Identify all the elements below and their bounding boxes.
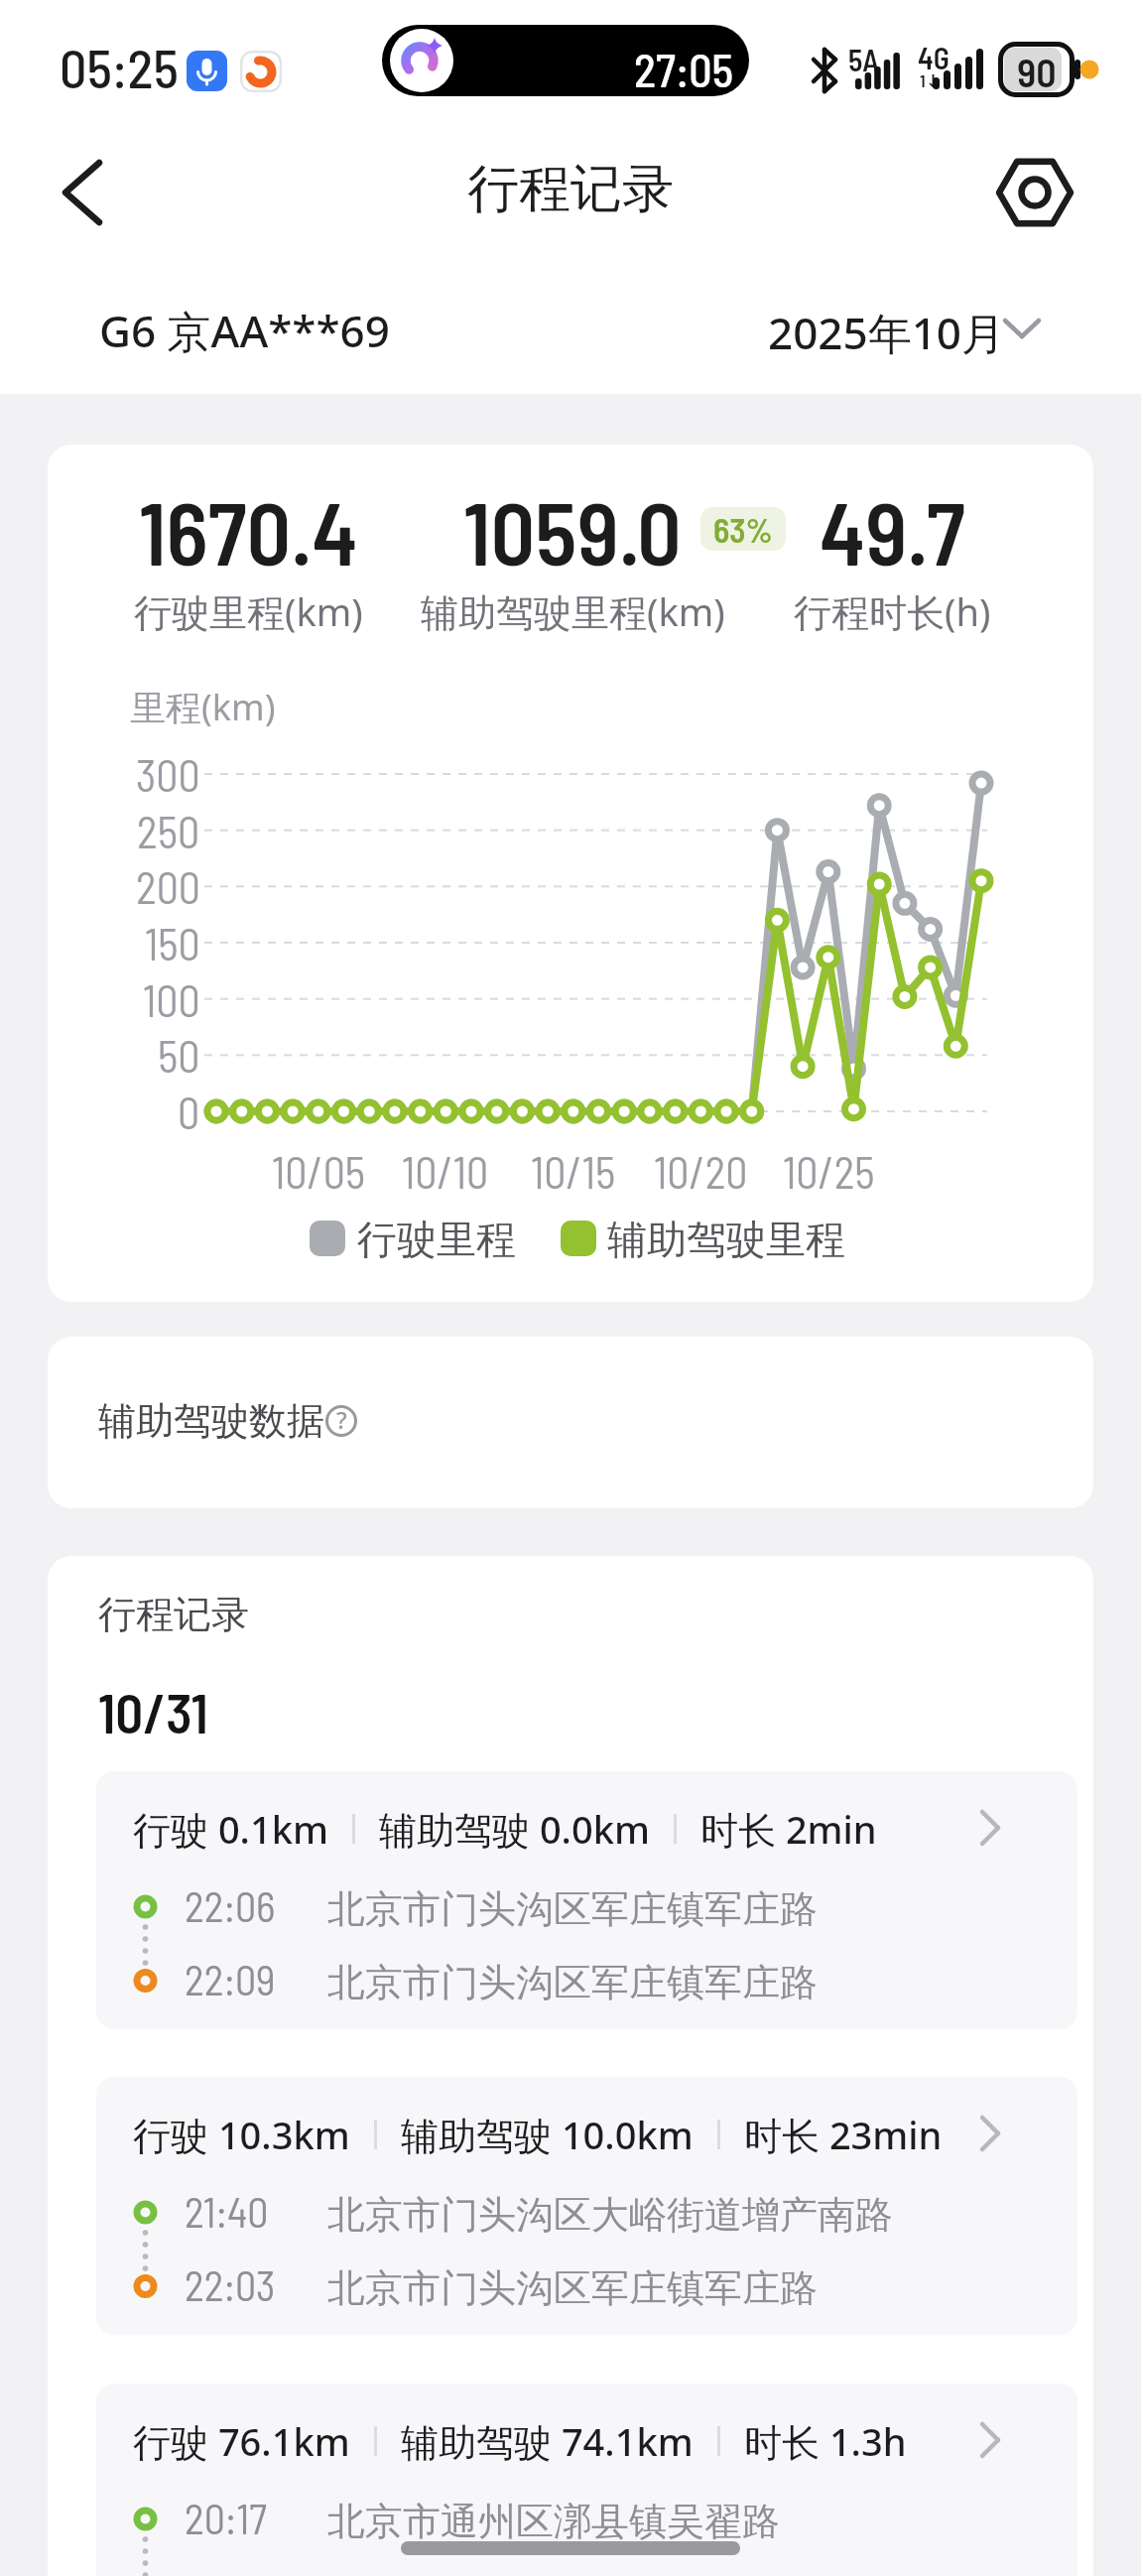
staticText: 2025年10月 xyxy=(768,303,1006,362)
staticText: 10/05 xyxy=(272,1145,366,1198)
staticText: 27:05 xyxy=(634,42,734,96)
staticText: 行程记录 xyxy=(467,157,674,222)
button[interactable]: 行驶 0.1km xyxy=(96,1771,1078,2029)
staticText: 200 xyxy=(136,860,200,913)
button[interactable] xyxy=(992,150,1078,235)
staticText: 63% xyxy=(713,509,773,550)
staticText: 22:03 xyxy=(185,2259,276,2309)
staticText: 90 xyxy=(1017,48,1057,95)
staticText: 辅助驾驶里程 xyxy=(607,1215,845,1264)
staticText: 10/15 xyxy=(531,1145,616,1198)
staticText: 里程(km) xyxy=(130,683,276,731)
staticText: 北京市门头沟区大峪街道增产南路 xyxy=(327,2191,893,2239)
button[interactable]: 2025年10月 xyxy=(728,293,1066,362)
staticText: 北京市门头沟区军庄镇军庄路 xyxy=(327,1959,818,2006)
staticText: 北京市门头沟区军庄镇军庄路 xyxy=(327,2264,818,2312)
staticText: 辅助驾驶 0.0km xyxy=(379,1803,650,1855)
staticText: 10/31 xyxy=(98,1679,208,1744)
staticText: 300 xyxy=(136,748,200,801)
staticText: 北京市通州区漷县镇吴翟路 xyxy=(327,2498,780,2545)
staticText: 49.7 xyxy=(820,478,965,583)
button[interactable]: 辅助驾驶数据 xyxy=(48,1337,1093,1508)
staticText: 辅助驾驶 74.1km xyxy=(401,2415,694,2467)
staticText: 北京市门头沟区军庄镇军庄路 xyxy=(327,1885,818,1933)
staticText: 250 xyxy=(137,805,200,857)
staticText: 辅助驾驶里程(km) xyxy=(421,585,725,637)
staticText: 05:25 xyxy=(60,35,179,99)
button[interactable]: 行驶 76.1km xyxy=(96,2383,1078,2576)
staticText: 1059.0 xyxy=(463,478,682,583)
staticText: 行驶里程(km) xyxy=(134,585,363,637)
staticText: G6 京AA***69 xyxy=(99,301,390,360)
staticText: 4G xyxy=(918,40,950,75)
staticText: 0 xyxy=(178,1086,200,1138)
staticText: 50 xyxy=(158,1029,200,1082)
staticText: 5A xyxy=(848,42,879,77)
staticText: 时长 23min xyxy=(744,2109,943,2160)
staticText: 20:17 xyxy=(185,2493,267,2542)
staticText: 辅助驾驶 10.0km xyxy=(401,2109,694,2160)
staticText: 150 xyxy=(145,917,200,969)
staticText: 行驶 0.1km xyxy=(133,1803,328,1855)
staticText: 1670.4 xyxy=(139,478,358,583)
staticText: 10/25 xyxy=(783,1145,875,1198)
staticText: 行驶 10.3km xyxy=(133,2109,350,2160)
staticText: 行程时长(h) xyxy=(794,585,991,637)
button[interactable]: 行驶 10.3km xyxy=(96,2077,1078,2335)
staticText: 行程记录 xyxy=(98,1591,249,1638)
staticText: 22:06 xyxy=(185,1880,276,1930)
staticText: 辅助驾驶数据 xyxy=(98,1397,324,1445)
staticText: ? xyxy=(336,1403,347,1436)
button[interactable] xyxy=(40,153,119,232)
staticText: 10/10 xyxy=(402,1145,489,1198)
staticText: 22:09 xyxy=(185,1954,276,2003)
staticText: 行驶里程 xyxy=(357,1215,516,1264)
staticText: 21:40 xyxy=(185,2186,269,2236)
staticText: 1↓ xyxy=(920,69,941,91)
staticText: 时长 2min xyxy=(700,1803,877,1855)
staticText: 行驶 76.1km xyxy=(133,2415,350,2467)
staticText: 时长 1.3h xyxy=(744,2415,907,2467)
staticText: 10/20 xyxy=(654,1145,748,1198)
staticText: 100 xyxy=(143,973,200,1026)
